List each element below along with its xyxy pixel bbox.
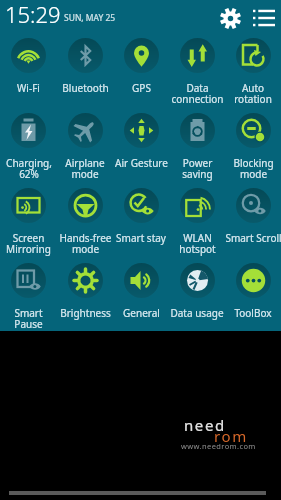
button[interactable]: Auto rotation	[225, 38, 281, 111]
button[interactable]: General	[113, 263, 169, 336]
staticText: WLAN hotspot	[179, 231, 216, 256]
staticText: General	[123, 306, 160, 320]
button[interactable]: Air Gesture	[113, 113, 169, 186]
staticText: Smart Scroll	[225, 231, 281, 245]
staticText: Auto rotation	[234, 81, 272, 106]
button[interactable]: Power saving	[169, 113, 225, 186]
button[interactable]: Smart Pause	[0, 263, 57, 336]
staticText: Wi-Fi	[17, 81, 40, 95]
staticText: 15:29	[5, 0, 61, 29]
staticText: Smart Pause	[14, 306, 43, 331]
button[interactable]: Data usage	[169, 263, 225, 336]
staticText: Hands-free mode	[59, 231, 112, 256]
button[interactable]: Smart Scroll	[225, 188, 281, 261]
staticText: www.needrom.com	[181, 441, 256, 451]
staticText: ToolBox	[234, 306, 272, 320]
staticText: Power saving	[182, 156, 213, 181]
button[interactable]: Charging, 62%	[0, 113, 57, 186]
staticText: Smart stay	[116, 231, 166, 245]
staticText: SUN, MAY 25	[64, 12, 116, 24]
button[interactable]: Settings	[213, 1, 247, 35]
staticText: GPS	[132, 81, 151, 95]
button[interactable]: Brightness	[57, 263, 113, 336]
staticText: Data connection	[171, 81, 224, 106]
button[interactable]: Smart stay	[113, 188, 169, 261]
button[interactable]: ToolBox	[225, 263, 281, 336]
button[interactable]: Screen Mirroring	[0, 188, 57, 261]
staticText: Air Gesture	[115, 156, 168, 170]
button[interactable]: Hands-free mode	[57, 188, 113, 261]
staticText: Blocking mode	[233, 156, 274, 181]
button[interactable]: Blocking mode	[225, 113, 281, 186]
button[interactable]: Bluetooth	[57, 38, 113, 111]
staticText: Charging, 62%	[6, 156, 52, 181]
button[interactable]: Airplane mode	[57, 113, 113, 186]
button[interactable]: Data connection	[169, 38, 225, 111]
button[interactable]: WLAN hotspot	[169, 188, 225, 261]
button[interactable]: GPS	[113, 38, 169, 111]
button[interactable]: Wi-Fi	[0, 38, 57, 111]
button[interactable]: Edit quick settings	[247, 1, 281, 35]
staticText: Data usage	[170, 306, 224, 320]
staticText: need	[184, 415, 226, 435]
staticText: Airplane mode	[65, 156, 105, 181]
staticText: rom	[214, 426, 248, 446]
staticText: Screen Mirroring	[6, 231, 51, 256]
staticText: Brightness	[60, 306, 111, 320]
staticText: Bluetooth	[62, 81, 109, 95]
